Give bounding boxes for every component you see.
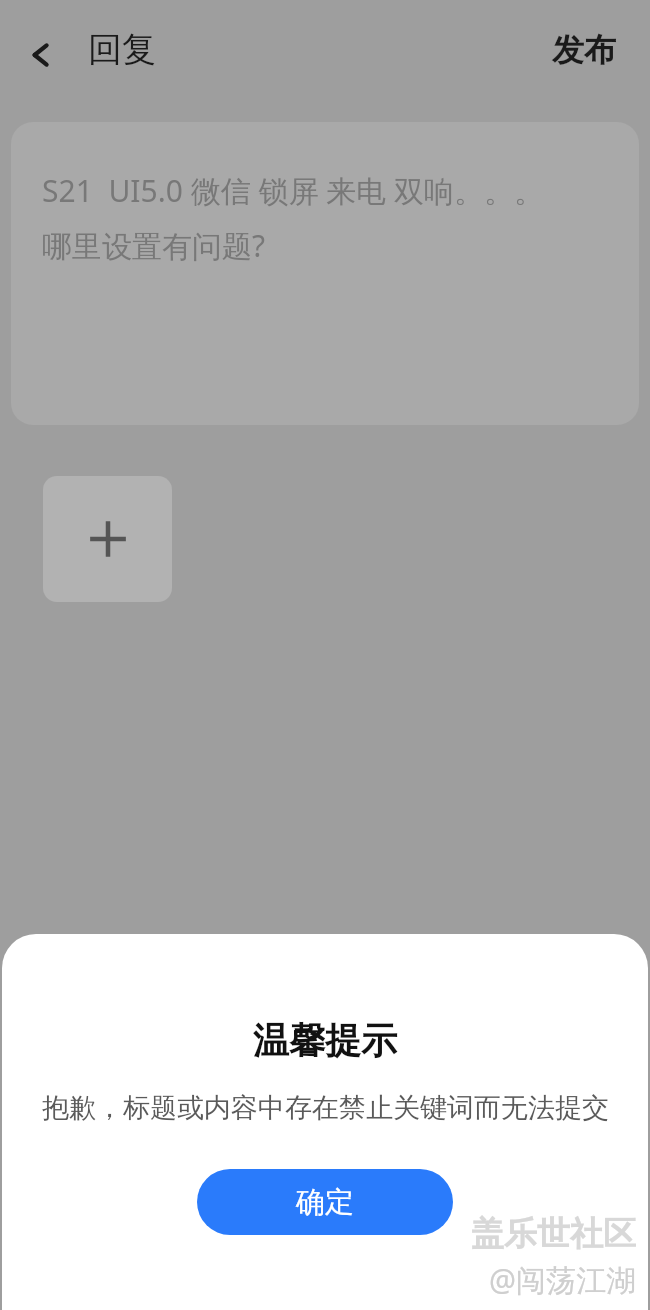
staticText: 回复 bbox=[88, 28, 156, 71]
staticText: 温馨提示 bbox=[253, 1018, 397, 1063]
button[interactable]: 添加图片 bbox=[43, 476, 172, 602]
button[interactable]: 发布 bbox=[544, 24, 624, 76]
staticText: 抱歉，标题或内容中存在禁止关键词而无法提交 bbox=[42, 1091, 609, 1125]
staticText: @闯荡江湖 bbox=[489, 1259, 636, 1300]
button[interactable]: 回复 bbox=[84, 22, 160, 77]
button[interactable]: 返回 bbox=[14, 26, 72, 84]
button[interactable]: S21 UI5.0 微信 锁屏 来电 双响。。。 bbox=[11, 122, 639, 425]
staticText: 盖乐世社区 bbox=[471, 1213, 636, 1255]
button[interactable]: 确定 bbox=[197, 1169, 453, 1235]
staticText: 确定 bbox=[296, 1184, 354, 1221]
staticText: S21 UI5.0 微信 锁屏 来电 双响。。。 bbox=[42, 170, 545, 211]
staticText: 发布 bbox=[552, 30, 616, 70]
staticText: 哪里设置有问题? bbox=[42, 225, 266, 266]
